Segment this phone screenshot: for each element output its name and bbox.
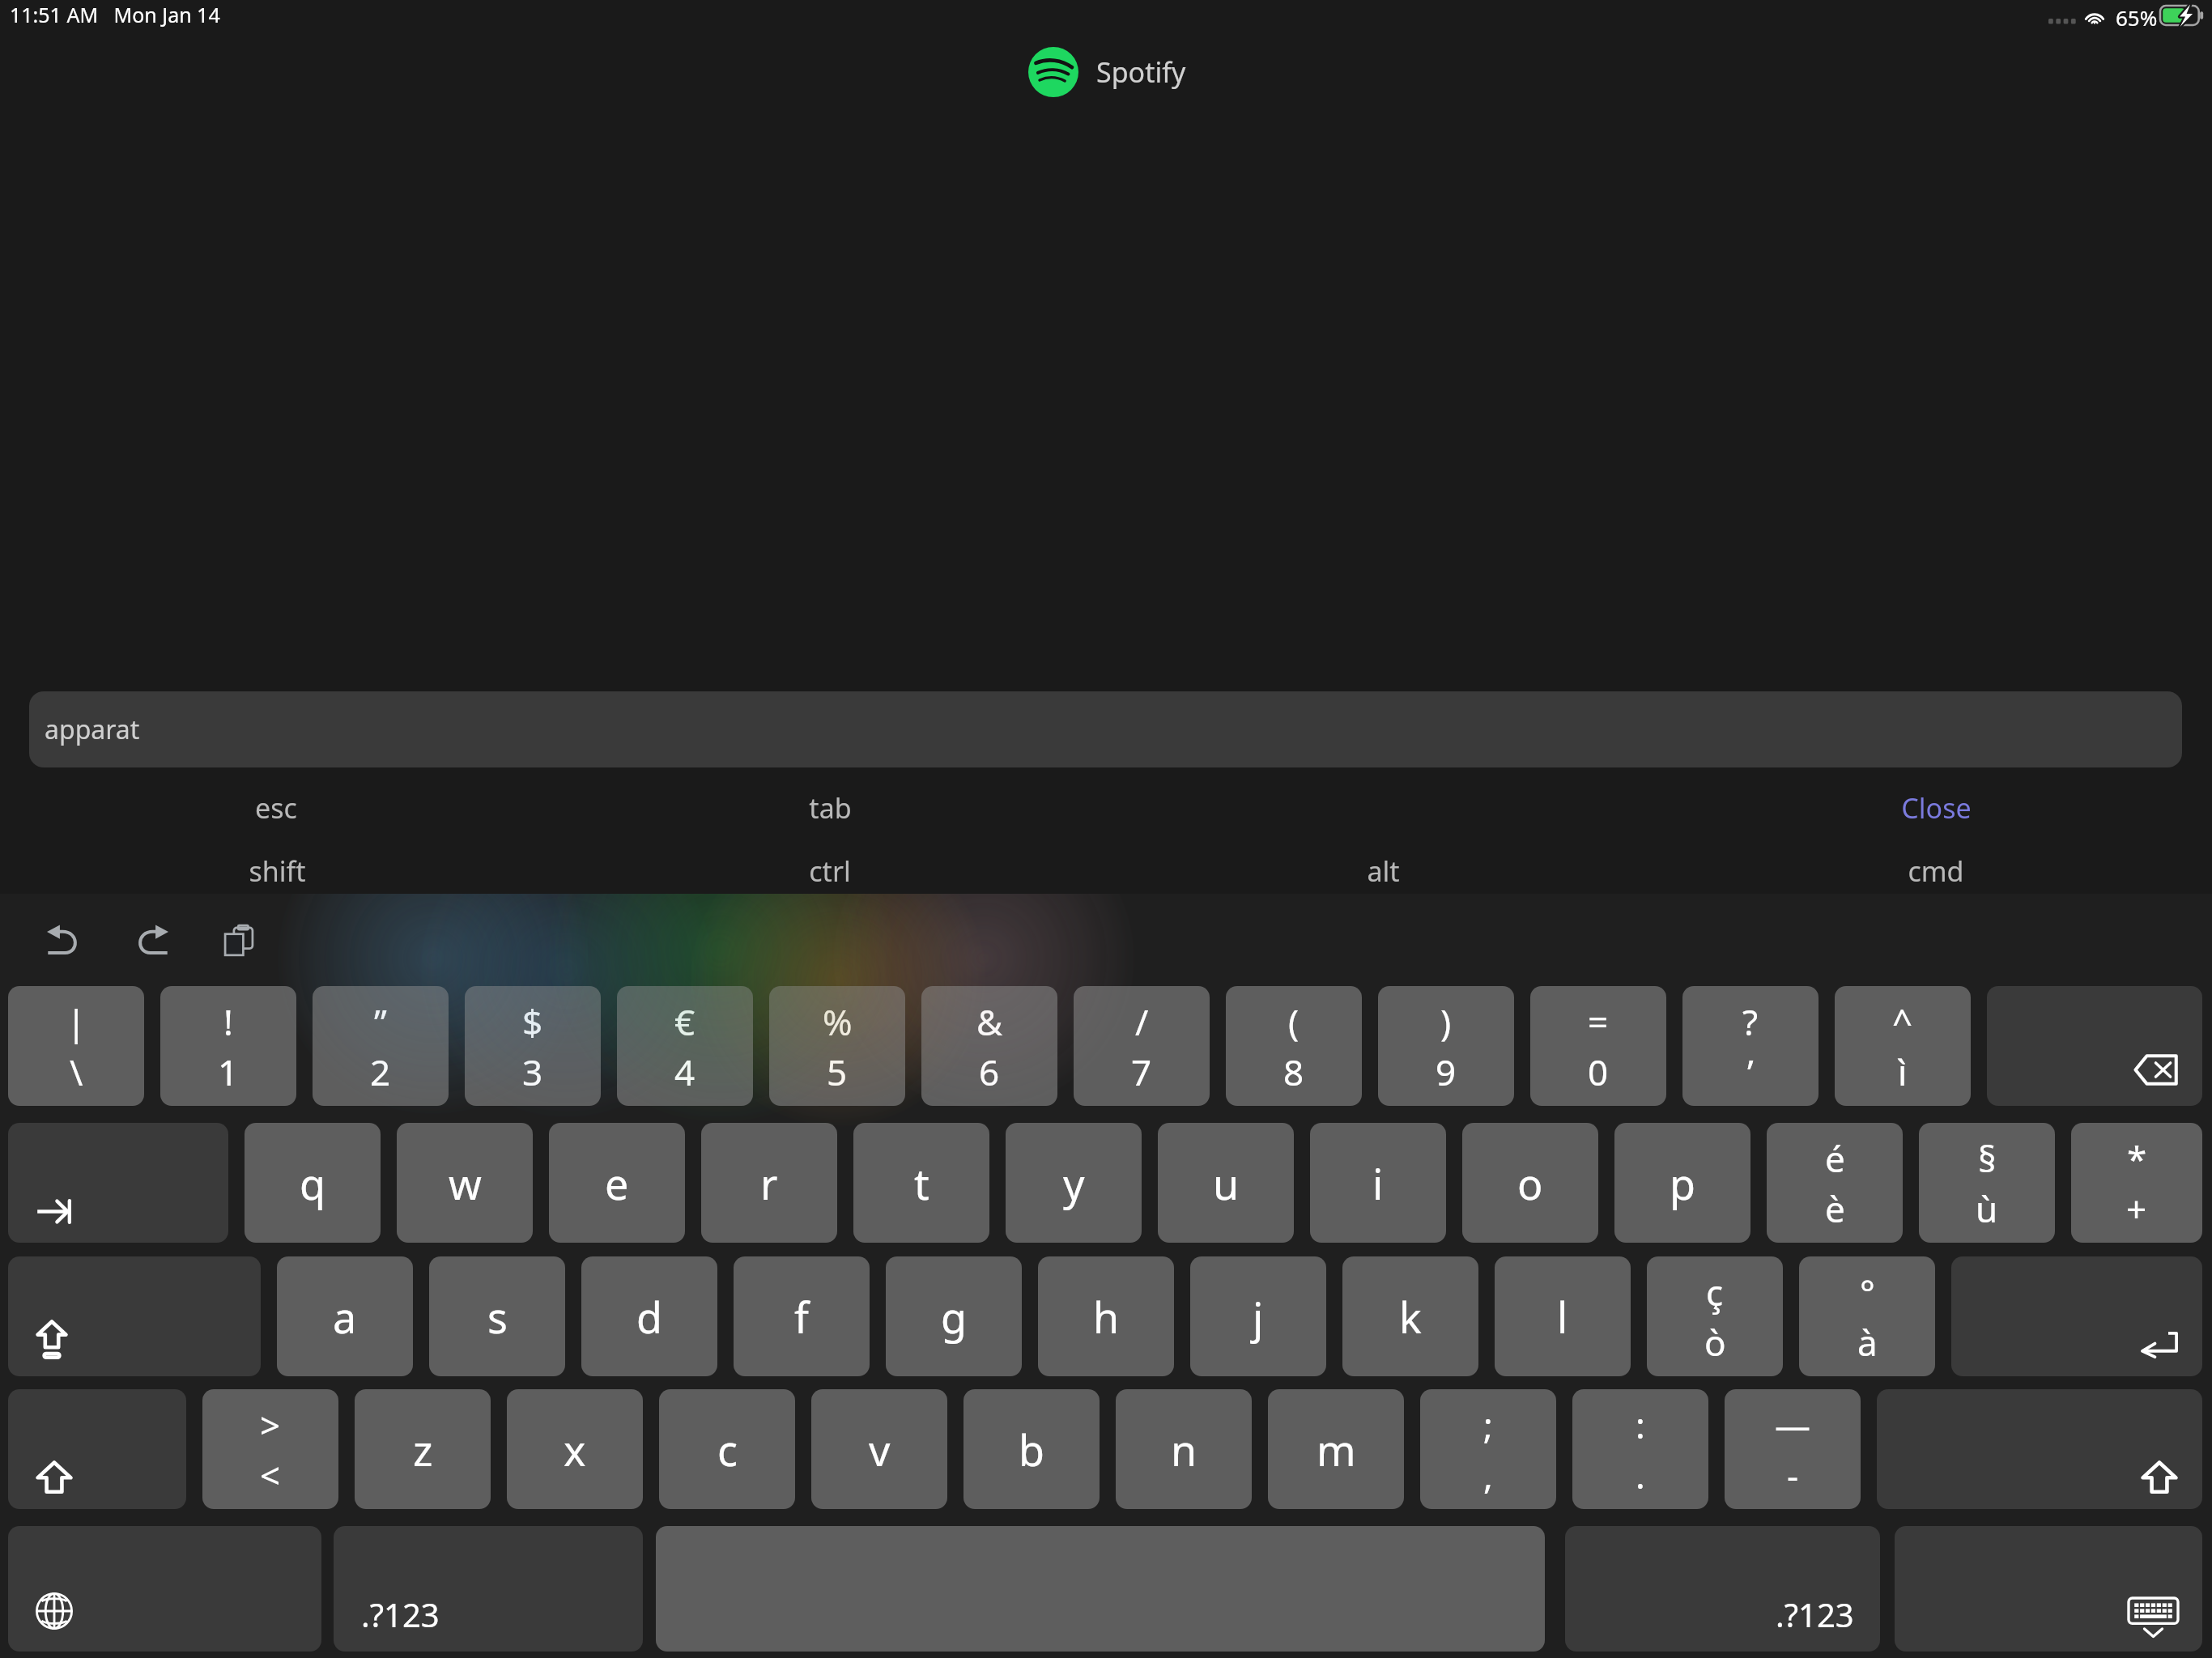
staticText: t <box>914 1154 929 1212</box>
button[interactable]: s <box>429 1256 565 1376</box>
button[interactable]: r <box>701 1123 837 1243</box>
button[interactable]: ! <box>160 986 296 1106</box>
staticText: ^ <box>1892 997 1913 1046</box>
button[interactable]: Caps lock <box>8 1256 261 1376</box>
button[interactable]: w <box>397 1123 533 1243</box>
button[interactable]: * <box>2071 1123 2202 1243</box>
staticText: Close <box>1901 789 1972 827</box>
staticText: d <box>636 1288 662 1346</box>
staticText: f <box>794 1288 809 1346</box>
staticText: apparat <box>45 712 140 747</box>
staticText: é <box>1825 1134 1845 1183</box>
button[interactable]: Hide keyboard <box>1895 1526 2202 1652</box>
button[interactable]: g <box>886 1256 1022 1376</box>
button[interactable]: Close <box>1847 782 2025 834</box>
button[interactable]: Shift <box>8 1389 186 1509</box>
button[interactable]: & <box>921 986 1057 1106</box>
staticText: s <box>487 1288 508 1346</box>
button[interactable]: Tab <box>8 1123 228 1243</box>
button[interactable]: d <box>581 1256 717 1376</box>
button[interactable]: § <box>1919 1123 2055 1243</box>
button[interactable]: q <box>245 1123 381 1243</box>
button[interactable]: v <box>811 1389 947 1509</box>
button[interactable]: j <box>1190 1256 1326 1376</box>
button[interactable]: | <box>8 986 144 1106</box>
button[interactable]: Space <box>656 1526 1545 1652</box>
button[interactable]: apparat <box>29 691 2182 767</box>
button[interactable]: é <box>1767 1123 1903 1243</box>
staticText: a <box>333 1288 357 1346</box>
staticText: shift <box>249 852 306 890</box>
button[interactable]: % <box>769 986 905 1106</box>
staticText: ( <box>1288 997 1300 1046</box>
button[interactable]: = <box>1530 986 1666 1106</box>
button[interactable]: f <box>734 1256 870 1376</box>
button[interactable]: n <box>1116 1389 1252 1509</box>
staticText: ù <box>1976 1184 1998 1233</box>
staticText: u <box>1213 1154 1240 1212</box>
staticText: j <box>1253 1288 1264 1346</box>
button[interactable]: Return <box>1951 1256 2202 1376</box>
staticText: p <box>1670 1154 1695 1212</box>
button[interactable]: Numbers <box>334 1526 643 1652</box>
button[interactable]: / <box>1074 986 1210 1106</box>
staticText: esc <box>255 789 297 827</box>
staticText: 7 <box>1131 1048 1152 1096</box>
staticText: . <box>1636 1451 1645 1499</box>
button[interactable]: t <box>853 1123 989 1243</box>
button[interactable]: ° <box>1799 1256 1935 1376</box>
button[interactable]: e <box>549 1123 685 1243</box>
button[interactable]: m <box>1268 1389 1404 1509</box>
button[interactable]: ) <box>1378 986 1514 1106</box>
button[interactable]: : <box>1572 1389 1708 1509</box>
staticText: 9 <box>1436 1048 1457 1096</box>
button[interactable]: b <box>963 1389 1100 1509</box>
button[interactable]: Backspace <box>1987 986 2202 1106</box>
button[interactable]: p <box>1614 1123 1750 1243</box>
button[interactable]: > <box>202 1389 338 1509</box>
button[interactable]: ç <box>1647 1256 1783 1376</box>
button[interactable]: u <box>1158 1123 1294 1243</box>
button[interactable]: Numbers <box>1565 1526 1880 1652</box>
button[interactable]: — <box>1725 1389 1861 1509</box>
staticText: 0 <box>1588 1048 1609 1096</box>
staticText: = <box>1588 997 1609 1046</box>
button[interactable]: Shift <box>1877 1389 2202 1509</box>
button[interactable]: ^ <box>1835 986 1971 1106</box>
button[interactable]: a <box>277 1256 413 1376</box>
button[interactable]: h <box>1038 1256 1174 1376</box>
button[interactable]: ? <box>1682 986 1819 1106</box>
staticText: 5 <box>827 1048 848 1096</box>
staticText: o <box>1517 1154 1543 1212</box>
button[interactable]: Undo <box>32 913 96 967</box>
staticText: ) <box>1440 997 1452 1046</box>
staticText: — <box>1775 1401 1810 1449</box>
button[interactable]: k <box>1342 1256 1478 1376</box>
button[interactable]: ” <box>313 986 449 1106</box>
staticText: $ <box>522 997 543 1046</box>
button[interactable]: Paste <box>210 913 268 967</box>
staticText: 8 <box>1283 1048 1304 1096</box>
button[interactable]: i <box>1310 1123 1446 1243</box>
button[interactable]: ; <box>1420 1389 1556 1509</box>
staticText: 4 <box>674 1048 696 1096</box>
staticText: 3 <box>522 1048 543 1096</box>
staticText: cmd <box>1908 852 1964 890</box>
button[interactable]: y <box>1006 1123 1142 1243</box>
button[interactable]: x <box>507 1389 643 1509</box>
button[interactable]: o <box>1462 1123 1598 1243</box>
staticText: ° <box>1860 1268 1875 1316</box>
staticText: b <box>1019 1421 1044 1478</box>
button[interactable]: $ <box>465 986 601 1106</box>
button[interactable]: l <box>1495 1256 1631 1376</box>
staticText: v <box>869 1421 891 1478</box>
button[interactable]: z <box>355 1389 491 1509</box>
staticText: ò <box>1704 1318 1726 1367</box>
button[interactable]: Redo <box>119 913 183 967</box>
staticText: z <box>413 1421 433 1478</box>
button[interactable]: € <box>617 986 753 1106</box>
staticText: > <box>260 1401 281 1449</box>
button[interactable]: Change keyboard <box>8 1526 321 1652</box>
button[interactable]: ( <box>1226 986 1362 1106</box>
button[interactable]: c <box>659 1389 795 1509</box>
